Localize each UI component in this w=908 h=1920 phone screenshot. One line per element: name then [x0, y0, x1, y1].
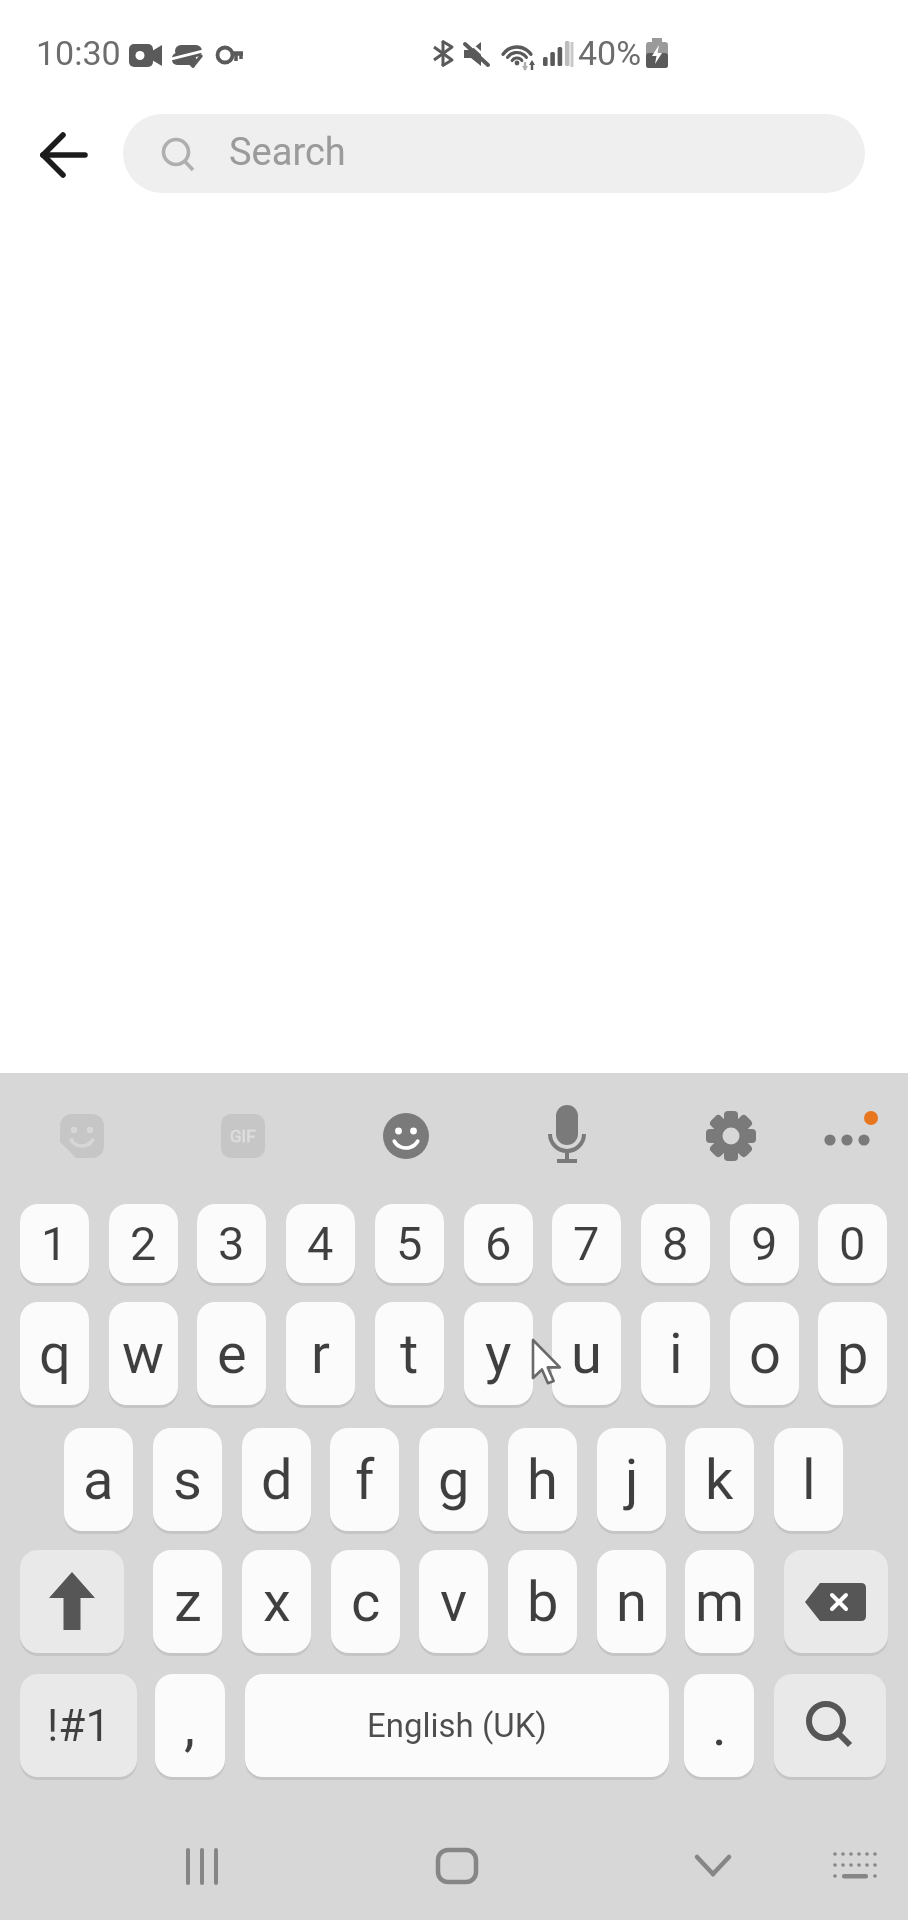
button[interactable]: u	[552, 1302, 621, 1405]
staticText: 4	[307, 1216, 334, 1271]
staticText: s	[173, 1447, 202, 1513]
staticText: b	[527, 1569, 559, 1635]
button[interactable]: 5	[375, 1204, 444, 1283]
button[interactable]: m	[685, 1550, 754, 1653]
staticText: t	[400, 1321, 419, 1387]
button[interactable]	[774, 1674, 886, 1777]
button[interactable]: a	[64, 1428, 133, 1531]
staticText: Search	[229, 130, 346, 175]
staticText: v	[440, 1569, 468, 1635]
staticText: 8	[662, 1216, 689, 1271]
staticText: 1	[41, 1216, 68, 1271]
button[interactable]: 3	[197, 1204, 266, 1283]
button[interactable]: b	[508, 1550, 577, 1653]
staticText: c	[351, 1569, 381, 1635]
button[interactable]: d	[242, 1428, 311, 1531]
button[interactable]: l	[774, 1428, 843, 1531]
button[interactable]: v	[419, 1550, 488, 1653]
button[interactable]: Search	[123, 114, 865, 193]
button[interactable]: 9	[730, 1204, 799, 1283]
staticText: ,	[184, 1693, 196, 1759]
button[interactable]: .	[684, 1674, 754, 1777]
button[interactable]: q	[20, 1302, 89, 1405]
button[interactable]: o	[730, 1302, 799, 1405]
staticText: English (UK)	[367, 1706, 547, 1745]
staticText: p	[837, 1321, 869, 1387]
staticText: a	[83, 1447, 114, 1513]
staticText: i	[669, 1321, 683, 1387]
staticText: 2	[130, 1216, 157, 1271]
button[interactable]	[697, 1102, 765, 1170]
staticText: d	[261, 1447, 293, 1513]
button[interactable]: g	[419, 1428, 488, 1531]
staticText: q	[39, 1321, 71, 1387]
staticText: o	[749, 1321, 781, 1387]
button[interactable]	[48, 1102, 116, 1170]
staticText: u	[571, 1321, 602, 1387]
staticText: n	[616, 1569, 647, 1635]
staticText: 7	[573, 1216, 600, 1271]
button[interactable]: t	[375, 1302, 444, 1405]
button[interactable]	[421, 1830, 493, 1902]
button[interactable]: f	[330, 1428, 399, 1531]
button[interactable]: p	[818, 1302, 887, 1405]
button[interactable]	[533, 1102, 601, 1170]
button[interactable]	[372, 1102, 440, 1170]
button[interactable]: y	[464, 1302, 533, 1405]
button[interactable]	[166, 1830, 238, 1902]
staticText: !#1	[47, 1700, 111, 1752]
button[interactable]	[677, 1830, 749, 1902]
staticText: l	[802, 1447, 816, 1513]
button[interactable]: w	[109, 1302, 178, 1405]
button[interactable]: 4	[286, 1204, 355, 1283]
button[interactable]	[812, 1102, 892, 1170]
staticText: r	[311, 1321, 330, 1387]
button[interactable]: !#1	[20, 1674, 137, 1777]
button[interactable]: 8	[641, 1204, 710, 1283]
staticText: z	[174, 1569, 202, 1635]
button[interactable]: 0	[818, 1204, 887, 1283]
button[interactable]: z	[153, 1550, 222, 1653]
button[interactable]: i	[641, 1302, 710, 1405]
staticText: f	[355, 1447, 375, 1513]
button[interactable]: e	[197, 1302, 266, 1405]
staticText: 5	[396, 1216, 423, 1271]
button[interactable]: h	[508, 1428, 577, 1531]
staticText: 40%	[578, 33, 642, 73]
staticText: y	[485, 1321, 512, 1387]
staticText: 9	[751, 1216, 778, 1271]
button[interactable]: c	[331, 1550, 400, 1653]
button[interactable]: 7	[552, 1204, 621, 1283]
button[interactable]	[20, 1550, 124, 1653]
button[interactable]: k	[685, 1428, 754, 1531]
staticText: h	[527, 1447, 558, 1513]
button[interactable]: 1	[20, 1204, 89, 1283]
button[interactable]: s	[153, 1428, 222, 1531]
button[interactable]: ,	[155, 1674, 225, 1777]
staticText: e	[217, 1321, 247, 1387]
staticText: 10:30	[36, 33, 121, 73]
staticText: GIF	[230, 1126, 256, 1146]
staticText: k	[705, 1447, 734, 1513]
button[interactable]: j	[597, 1428, 666, 1531]
button[interactable]	[784, 1550, 888, 1653]
staticText: g	[438, 1447, 470, 1513]
staticText: j	[625, 1447, 639, 1513]
button[interactable]: 6	[464, 1204, 533, 1283]
staticText: x	[263, 1569, 291, 1635]
button[interactable]: English (UK)	[245, 1674, 669, 1777]
staticText: 0	[839, 1216, 866, 1271]
button[interactable]	[819, 1830, 891, 1902]
button[interactable]: n	[597, 1550, 666, 1653]
staticText: m	[695, 1569, 745, 1635]
staticText: 3	[218, 1216, 245, 1271]
button[interactable]: 2	[109, 1204, 178, 1283]
button[interactable]: x	[242, 1550, 311, 1653]
staticText: w	[122, 1321, 165, 1387]
button[interactable]: r	[286, 1302, 355, 1405]
staticText: 6	[485, 1216, 512, 1271]
staticText: .	[712, 1693, 727, 1759]
button[interactable]: GIF	[209, 1102, 277, 1170]
button[interactable]	[28, 119, 100, 191]
